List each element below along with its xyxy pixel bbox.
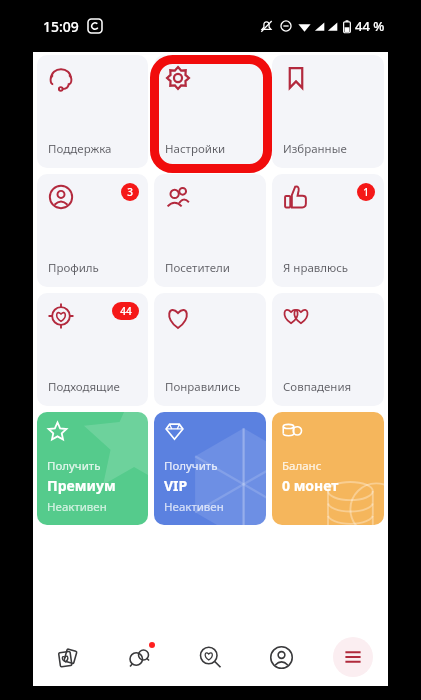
staticText: Профиль — [48, 260, 99, 276]
staticText: Неактивен — [47, 499, 107, 515]
staticText: Премиум — [47, 476, 116, 495]
button[interactable]: Получить — [37, 412, 148, 525]
button[interactable]: Баланс — [272, 412, 384, 525]
staticText: Совпадения — [283, 379, 352, 395]
button[interactable]: Понравились — [154, 293, 266, 406]
staticText: Понравились — [165, 379, 241, 395]
button[interactable]: Cards — [33, 628, 104, 686]
staticText: Неактивен — [164, 499, 224, 515]
button[interactable]: Посетители — [154, 174, 266, 287]
staticText: Получить — [164, 458, 218, 474]
button[interactable]: 3 — [37, 174, 148, 287]
button[interactable]: Избранные — [272, 55, 384, 168]
staticText: 1 — [363, 185, 369, 199]
button[interactable]: Search — [175, 628, 246, 686]
button[interactable]: Profile — [246, 628, 317, 686]
staticText: 44 % — [355, 17, 385, 35]
button[interactable]: Настройки — [154, 55, 266, 168]
button[interactable]: 44 — [37, 293, 148, 406]
staticText: Избранные — [283, 141, 347, 157]
staticText: Баланс — [282, 458, 322, 474]
button[interactable]: Поддержка — [37, 55, 148, 168]
staticText: 44 — [120, 304, 132, 318]
button[interactable]: Получить — [154, 412, 266, 525]
staticText: Поддержка — [48, 141, 112, 157]
button[interactable]: Menu — [333, 637, 373, 677]
staticText: Посетители — [165, 260, 230, 276]
staticText: Настройки — [165, 141, 226, 157]
staticText: 15:09 — [43, 17, 79, 36]
button[interactable]: 1 — [272, 174, 384, 287]
button[interactable]: Совпадения — [272, 293, 384, 406]
staticText: VIP — [164, 476, 188, 495]
staticText: Подходящие — [48, 379, 120, 395]
staticText: Получить — [47, 458, 101, 474]
staticText: 0 монет — [282, 476, 339, 495]
staticText: 3 — [127, 185, 133, 199]
staticText: Я нравлюсь — [283, 260, 349, 276]
button[interactable]: Messages — [104, 628, 175, 686]
